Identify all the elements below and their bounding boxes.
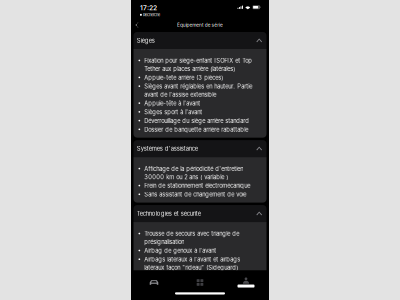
button[interactable]: Sièges [133,32,266,49]
staticText: Appuie-tête à l'avant [144,100,200,107]
button[interactable]: Technologies et sécurité [133,205,266,222]
staticText: Système de surveillance de la pression d… [144,273,258,288]
staticText: Trousse de secours avec triangle de prés… [144,230,239,245]
staticText: Dossier de banquette arrière rabattable [144,126,248,133]
staticText: Frein de stationnement électromécanique [144,182,250,189]
staticText: Équipement de série [177,22,223,28]
button[interactable]: Services [177,276,223,288]
staticText: Fixation pour siège-enfant ISOFIX et Top… [144,57,252,72]
staticText: Airbag de genoux à l'avant [144,247,216,254]
button[interactable]: Véhicule [131,276,177,288]
staticText: 17:22 [140,4,157,12]
staticText: Appuie-tête arrière (3 pièces) [144,74,223,81]
staticText: Systèmes d'assistance [137,145,198,152]
staticText: Technologies et sécurité [137,210,201,217]
staticText: Déverrouillage du siège arrière standard [144,117,249,124]
staticText: Airbags latéraux à l'avant et airbags la… [144,256,240,271]
staticText: Sièges sport à l'avant [144,109,202,115]
staticText: Sièges avant réglables en hauteur. Parti… [144,83,252,98]
button[interactable]: Profil [223,276,269,288]
button[interactable]: Systèmes d'assistance [133,140,266,157]
staticText: Sans assistant de changement de voie [144,191,246,198]
staticText: Affichage de la périodicité d'entretien … [144,165,243,180]
staticText: Sièges [137,37,155,44]
staticText: Recherche [143,12,160,17]
button[interactable]: Retour [131,20,143,30]
